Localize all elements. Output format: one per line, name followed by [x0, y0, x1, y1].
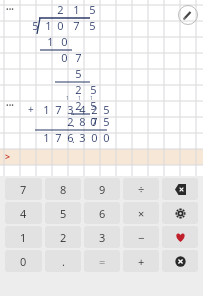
staticText: 7	[73, 18, 80, 33]
button[interactable]: 9	[84, 178, 120, 200]
staticText: 2	[67, 114, 74, 129]
staticText: 1	[90, 95, 93, 102]
staticText: 7	[75, 50, 82, 65]
staticText: 7	[55, 130, 62, 145]
staticText: 5	[89, 18, 96, 33]
button[interactable]: Eraser tool	[178, 5, 198, 25]
staticText: 8	[60, 182, 67, 197]
staticText: 5	[90, 98, 97, 113]
button[interactable]: 2	[45, 226, 81, 248]
staticText: .	[62, 254, 65, 269]
staticText: 2	[75, 82, 82, 97]
staticText: 0	[61, 34, 68, 49]
staticText: 2	[91, 102, 98, 117]
button[interactable]: Settings	[162, 202, 198, 224]
staticText: 1	[43, 130, 50, 145]
staticText: .	[72, 132, 75, 146]
button[interactable]: 8	[45, 178, 81, 200]
button[interactable]: 7	[5, 178, 42, 200]
staticText: 5	[60, 206, 67, 221]
staticText: 5	[103, 114, 110, 129]
staticText: 5	[75, 66, 82, 81]
staticText: 8	[79, 114, 86, 129]
staticText: 3	[67, 102, 74, 117]
staticText: 6	[99, 206, 106, 221]
staticText: 1	[20, 230, 27, 245]
button[interactable]: 5	[45, 202, 81, 224]
staticText: 1	[78, 95, 81, 102]
staticText: 0	[61, 50, 68, 65]
button[interactable]: Clear	[162, 250, 198, 272]
staticText: ×	[138, 206, 145, 221]
staticText: 3	[79, 130, 86, 145]
staticText: 2	[75, 98, 82, 113]
staticText: 2	[60, 230, 67, 245]
button[interactable]: 3	[84, 226, 120, 248]
staticText: 1	[47, 34, 54, 49]
button[interactable]: 4	[5, 202, 42, 224]
staticText: +	[138, 254, 145, 269]
button[interactable]: 0	[5, 250, 42, 272]
staticText: 0	[91, 130, 98, 145]
staticText: .	[72, 104, 75, 118]
staticText: •••	[6, 101, 14, 111]
button[interactable]: 1	[5, 226, 42, 248]
staticText: •••	[6, 5, 14, 15]
staticText: −	[138, 230, 145, 245]
staticText: 0	[57, 18, 64, 33]
staticText: +	[28, 102, 34, 116]
staticText: 0	[103, 130, 110, 145]
staticText: ÷	[138, 182, 145, 197]
button[interactable]: ÷	[123, 178, 159, 200]
staticText: 1	[66, 95, 69, 102]
staticText: 0	[20, 254, 27, 269]
staticText: 1	[43, 102, 50, 117]
staticText: 0	[90, 114, 97, 129]
button[interactable]: .	[45, 250, 81, 272]
button[interactable]: =	[84, 250, 120, 272]
staticText: =	[99, 254, 106, 269]
staticText: 5	[89, 2, 96, 17]
staticText: 5	[103, 102, 110, 117]
staticText: 5	[90, 82, 97, 97]
staticText: 7	[91, 114, 98, 129]
staticText: 1	[73, 2, 80, 17]
staticText: 7	[55, 102, 62, 117]
button[interactable]: Backspace	[162, 178, 198, 200]
button[interactable]: 6	[84, 202, 120, 224]
staticText: 4	[79, 102, 86, 117]
staticText: 5	[32, 18, 39, 33]
staticText: 4	[20, 206, 27, 221]
staticText: 7	[20, 182, 27, 197]
staticText: >	[5, 150, 11, 162]
staticText: 1	[45, 18, 52, 33]
button[interactable]: ×	[123, 202, 159, 224]
staticText: 6	[67, 130, 74, 145]
button[interactable]: −	[123, 226, 159, 248]
staticText: .	[72, 116, 75, 130]
button[interactable]: Favorite	[162, 226, 198, 248]
staticText: 3	[99, 230, 106, 245]
staticText: 9	[99, 182, 106, 197]
button[interactable]: +	[123, 250, 159, 272]
staticText: 2	[57, 2, 64, 17]
